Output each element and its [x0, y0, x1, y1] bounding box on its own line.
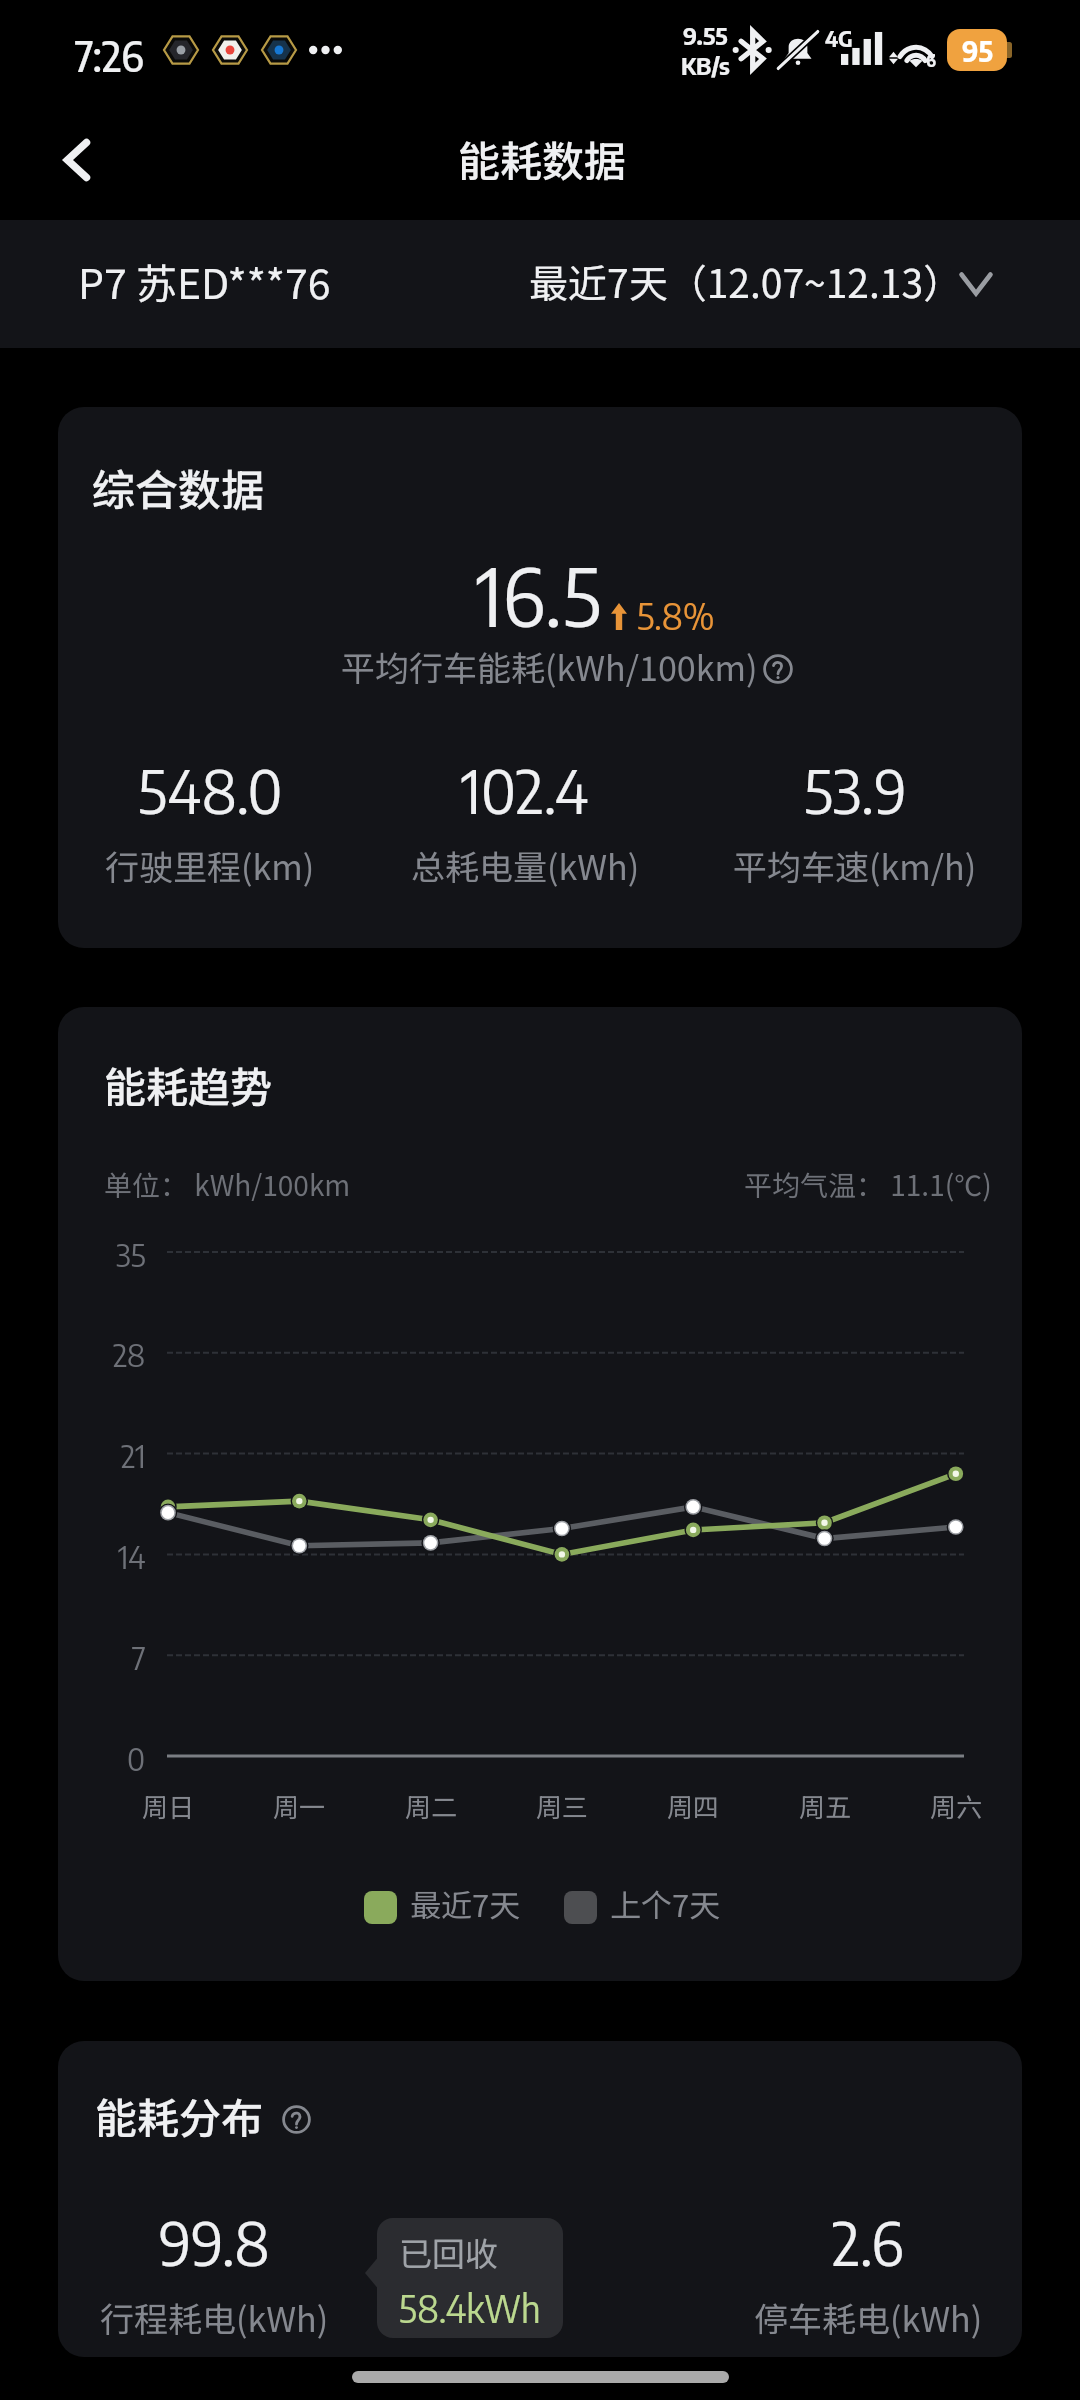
button[interactable]: Back	[35, 118, 119, 202]
staticText: 已回收	[399, 2228, 498, 2276]
staticText: 2.6	[832, 2204, 904, 2279]
staticText: 能耗分布	[95, 2085, 264, 2146]
staticText: 周一	[273, 1787, 326, 1825]
staticText: 最近7天（12.07~12.13）	[529, 253, 963, 309]
staticText: 7:26	[75, 30, 144, 81]
staticText: 周二	[405, 1787, 458, 1825]
staticText: 58.4kWh	[399, 2285, 541, 2331]
staticText: P7 苏ED***76	[78, 251, 331, 310]
staticText: 周三	[536, 1787, 589, 1825]
staticText: 6	[926, 49, 937, 70]
staticText: 平均行车能耗(kWh/100km)	[341, 642, 758, 691]
staticText: 4G	[825, 24, 853, 52]
staticText: 最近7天	[410, 1881, 521, 1926]
staticText: 周六	[930, 1787, 983, 1825]
staticText: 21	[121, 1436, 146, 1475]
staticText: 能耗趋势	[104, 1054, 273, 1115]
button[interactable]: 最近7天（12.07~12.13）	[0, 220, 434, 276]
staticText: 14	[118, 1537, 146, 1576]
staticText: 周四	[667, 1787, 720, 1825]
staticText: 9.55	[683, 20, 728, 50]
staticText: KB/s	[681, 50, 730, 80]
staticText: 平均车速(km/h)	[733, 841, 977, 890]
staticText: 16.5	[476, 546, 601, 645]
staticText: 行驶里程(km)	[105, 841, 315, 890]
staticText: 28	[113, 1335, 146, 1374]
staticText: 5.8%	[637, 593, 715, 638]
staticText: 7	[132, 1638, 146, 1677]
staticText: 0	[127, 1739, 146, 1778]
staticText: 综合数据	[92, 456, 264, 518]
staticText: 能耗数据	[458, 128, 627, 189]
staticText: 平均气温： 11.1(℃)	[744, 1164, 992, 1205]
staticText: 周日	[142, 1787, 195, 1825]
staticText: 周五	[799, 1787, 852, 1825]
staticText: 102.4	[461, 752, 589, 827]
staticText: 35	[116, 1235, 146, 1274]
staticText: 上个7天	[610, 1881, 721, 1926]
staticText: 单位： kWh/100km	[104, 1164, 351, 1205]
staticText: 总耗电量(kWh)	[411, 841, 640, 890]
staticText: 行程耗电(kWh)	[100, 2293, 329, 2342]
staticText: 95	[962, 33, 993, 68]
staticText: 99.8	[159, 2204, 270, 2279]
staticText: 53.9	[804, 752, 907, 827]
staticText: 停车耗电(kWh)	[754, 2293, 983, 2342]
staticText: 548.0	[138, 752, 283, 827]
